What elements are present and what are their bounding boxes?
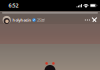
staticText: 6:52	[8, 2, 18, 9]
button[interactable]: holyhaein	[3, 16, 45, 24]
button[interactable]: More options	[84, 17, 90, 23]
staticText: 25분	[37, 17, 45, 23]
staticText: holyhaein	[12, 17, 31, 23]
button[interactable]: Close	[91, 17, 97, 23]
